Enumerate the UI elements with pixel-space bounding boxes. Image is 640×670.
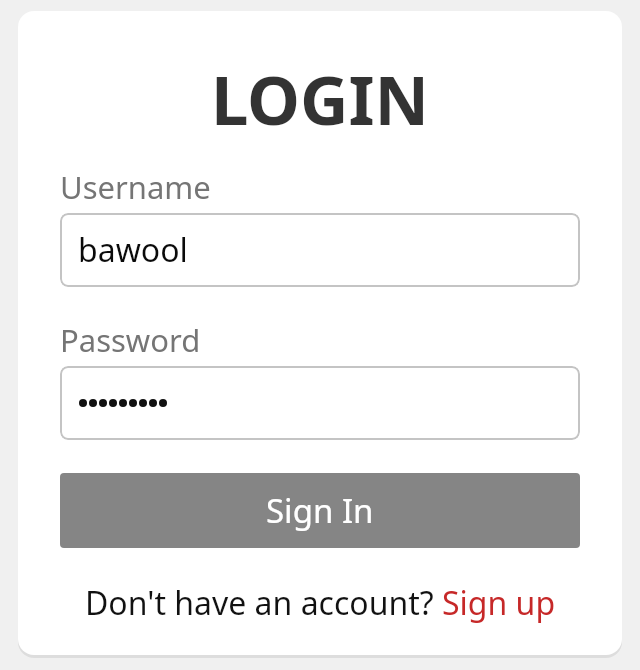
button[interactable]: Sign up xyxy=(442,581,556,625)
staticText: Sign In xyxy=(266,488,374,533)
staticText: Password xyxy=(60,319,201,361)
button[interactable] xyxy=(60,366,580,440)
button[interactable]: Sign In xyxy=(60,473,580,548)
staticText: LOGIN xyxy=(18,53,622,144)
staticText: Username xyxy=(60,166,211,208)
staticText: Sign up xyxy=(442,581,556,625)
button[interactable]: bawool xyxy=(60,213,580,287)
staticText: bawool xyxy=(78,228,188,272)
staticText: Don't have an account? xyxy=(85,581,442,625)
